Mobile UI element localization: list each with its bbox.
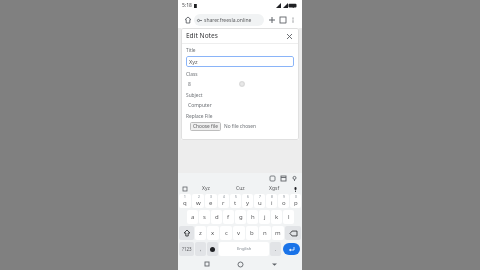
button[interactable]: Voice input (291, 185, 299, 193)
staticText: Computer (188, 102, 212, 109)
staticText: Xyz (189, 58, 198, 65)
staticText: a (191, 213, 195, 221)
staticText: t (234, 199, 237, 207)
button[interactable]: a (187, 210, 198, 224)
staticText: p (294, 199, 298, 207)
button[interactable]: n (259, 226, 271, 240)
button[interactable]: Backspace (285, 226, 301, 240)
button[interactable]: Settings (291, 175, 298, 182)
staticText: e (209, 199, 213, 207)
button[interactable]: 5 (230, 194, 241, 208)
button[interactable]: Emoji (207, 242, 218, 256)
staticText: Xgsf (269, 185, 280, 192)
button[interactable]: z (195, 226, 206, 240)
staticText: 9 (283, 195, 285, 199)
staticText: 5:18 (182, 2, 192, 9)
button[interactable]: Google lens (181, 185, 188, 192)
staticText: 7 (259, 195, 261, 199)
staticText: 1 (184, 195, 186, 199)
button[interactable]: c (220, 226, 232, 240)
button[interactable]: k (271, 210, 282, 224)
button[interactable]: s (199, 210, 210, 224)
staticText: x (211, 229, 215, 237)
staticText: k (275, 213, 279, 221)
button[interactable]: m (272, 226, 284, 240)
staticText: b (250, 229, 254, 237)
button[interactable]: 9 (278, 194, 289, 208)
button[interactable]: More options (288, 15, 298, 25)
button[interactable]: Home (182, 14, 193, 25)
button[interactable]: Computer (186, 100, 294, 110)
button[interactable]: Xyz (186, 56, 294, 67)
staticText: 8 (271, 195, 273, 199)
button[interactable]: 2 (192, 194, 204, 208)
button[interactable]: Clipboard (280, 175, 287, 182)
button[interactable]: d (211, 210, 222, 224)
button[interactable]: Choose file (190, 122, 221, 131)
staticText: Edit Notes (186, 31, 218, 40)
staticText: 8 (188, 81, 191, 88)
staticText: g (239, 213, 243, 221)
button[interactable]: Enter (283, 243, 300, 255)
staticText: 4 (223, 195, 225, 199)
staticText: Xyz (202, 185, 210, 192)
staticText: 5 (235, 195, 237, 199)
staticText: y (246, 199, 250, 207)
button[interactable]: 1 (179, 194, 191, 208)
button[interactable]: New tab (266, 14, 277, 25)
button[interactable]: 6 (242, 194, 253, 208)
button[interactable]: ?123 (179, 242, 194, 256)
button[interactable]: Period (270, 242, 281, 256)
button[interactable]: Xyz (188, 183, 223, 194)
staticText: r (222, 199, 225, 207)
staticText: . (275, 246, 277, 253)
button[interactable]: Home (235, 259, 245, 269)
staticText: 6 (247, 195, 249, 199)
staticText: 3 (210, 195, 212, 199)
button[interactable]: f (223, 210, 234, 224)
button[interactable]: Stickers (269, 175, 276, 182)
button[interactable]: 0 (290, 194, 301, 208)
button[interactable]: Close (284, 31, 294, 41)
button[interactable]: Back (269, 259, 279, 269)
staticText: o (282, 199, 286, 207)
staticText: z (199, 229, 202, 237)
staticText: , (200, 246, 202, 253)
staticText: 0 (295, 195, 297, 199)
button[interactable]: l (283, 210, 294, 224)
staticText: i (271, 199, 273, 207)
staticText: n (263, 229, 267, 237)
button[interactable]: h (247, 210, 258, 224)
button[interactable]: Cuz (223, 183, 257, 194)
staticText: Title (186, 47, 196, 54)
button[interactable]: Tabs (277, 14, 288, 25)
button[interactable]: j (259, 210, 270, 224)
button[interactable]: Xgsf (257, 183, 291, 194)
button[interactable]: v (233, 226, 245, 240)
button[interactable]: Comma (195, 242, 206, 256)
staticText: c (225, 229, 228, 237)
staticText: h (251, 213, 255, 221)
staticText: w (196, 199, 201, 207)
staticText: ?123 (182, 246, 192, 252)
staticText: Class (186, 71, 198, 78)
staticText: No file chosen (224, 123, 257, 130)
button[interactable]: x (207, 226, 219, 240)
staticText: d (215, 213, 219, 221)
button[interactable]: Recents (202, 259, 212, 269)
button[interactable]: English (219, 242, 269, 256)
button[interactable]: 3 (205, 194, 217, 208)
button[interactable]: sharer.freesla.online (194, 14, 264, 26)
button[interactable]: 8 (266, 194, 277, 208)
button[interactable]: g (235, 210, 246, 224)
button[interactable]: 4 (218, 194, 229, 208)
button[interactable]: Shift (179, 226, 194, 240)
staticText: 2 (198, 195, 200, 199)
staticText: l (288, 213, 290, 221)
button[interactable]: 7 (254, 194, 265, 208)
button[interactable]: 8 (186, 79, 294, 89)
button[interactable]: b (246, 226, 258, 240)
staticText: f (227, 213, 230, 221)
staticText: m (275, 229, 281, 237)
staticText: v (237, 229, 241, 237)
